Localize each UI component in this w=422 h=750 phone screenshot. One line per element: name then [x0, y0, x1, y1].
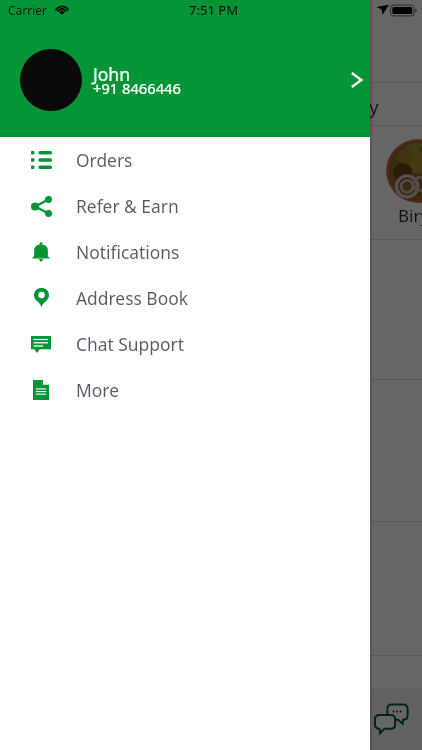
staticText: John [93, 62, 130, 86]
button[interactable]: Address Book [0, 275, 370, 321]
button[interactable]: John [20, 22, 361, 137]
button[interactable]: Notifications [0, 229, 370, 275]
button[interactable]: Chat support [372, 700, 412, 740]
button[interactable]: More [0, 367, 370, 413]
staticText: Refer & Earn [76, 194, 179, 218]
staticText: Chat Support [76, 332, 184, 356]
staticText: 7:51 PM [189, 1, 239, 19]
staticText: +91 8466446 [93, 78, 181, 98]
staticText: Notifications [76, 240, 180, 264]
staticText: More [76, 378, 119, 402]
staticText: Address Book [76, 286, 188, 310]
button[interactable]: Orders [0, 137, 370, 183]
other: Profile [342, 67, 368, 93]
staticText: Biryani [398, 204, 422, 227]
button[interactable]: Chat Support [0, 321, 370, 367]
staticText: Orders [76, 148, 133, 172]
staticText: Variety [320, 95, 379, 120]
staticText: Carrier [8, 2, 48, 18]
button[interactable]: Refer & Earn [0, 183, 370, 229]
